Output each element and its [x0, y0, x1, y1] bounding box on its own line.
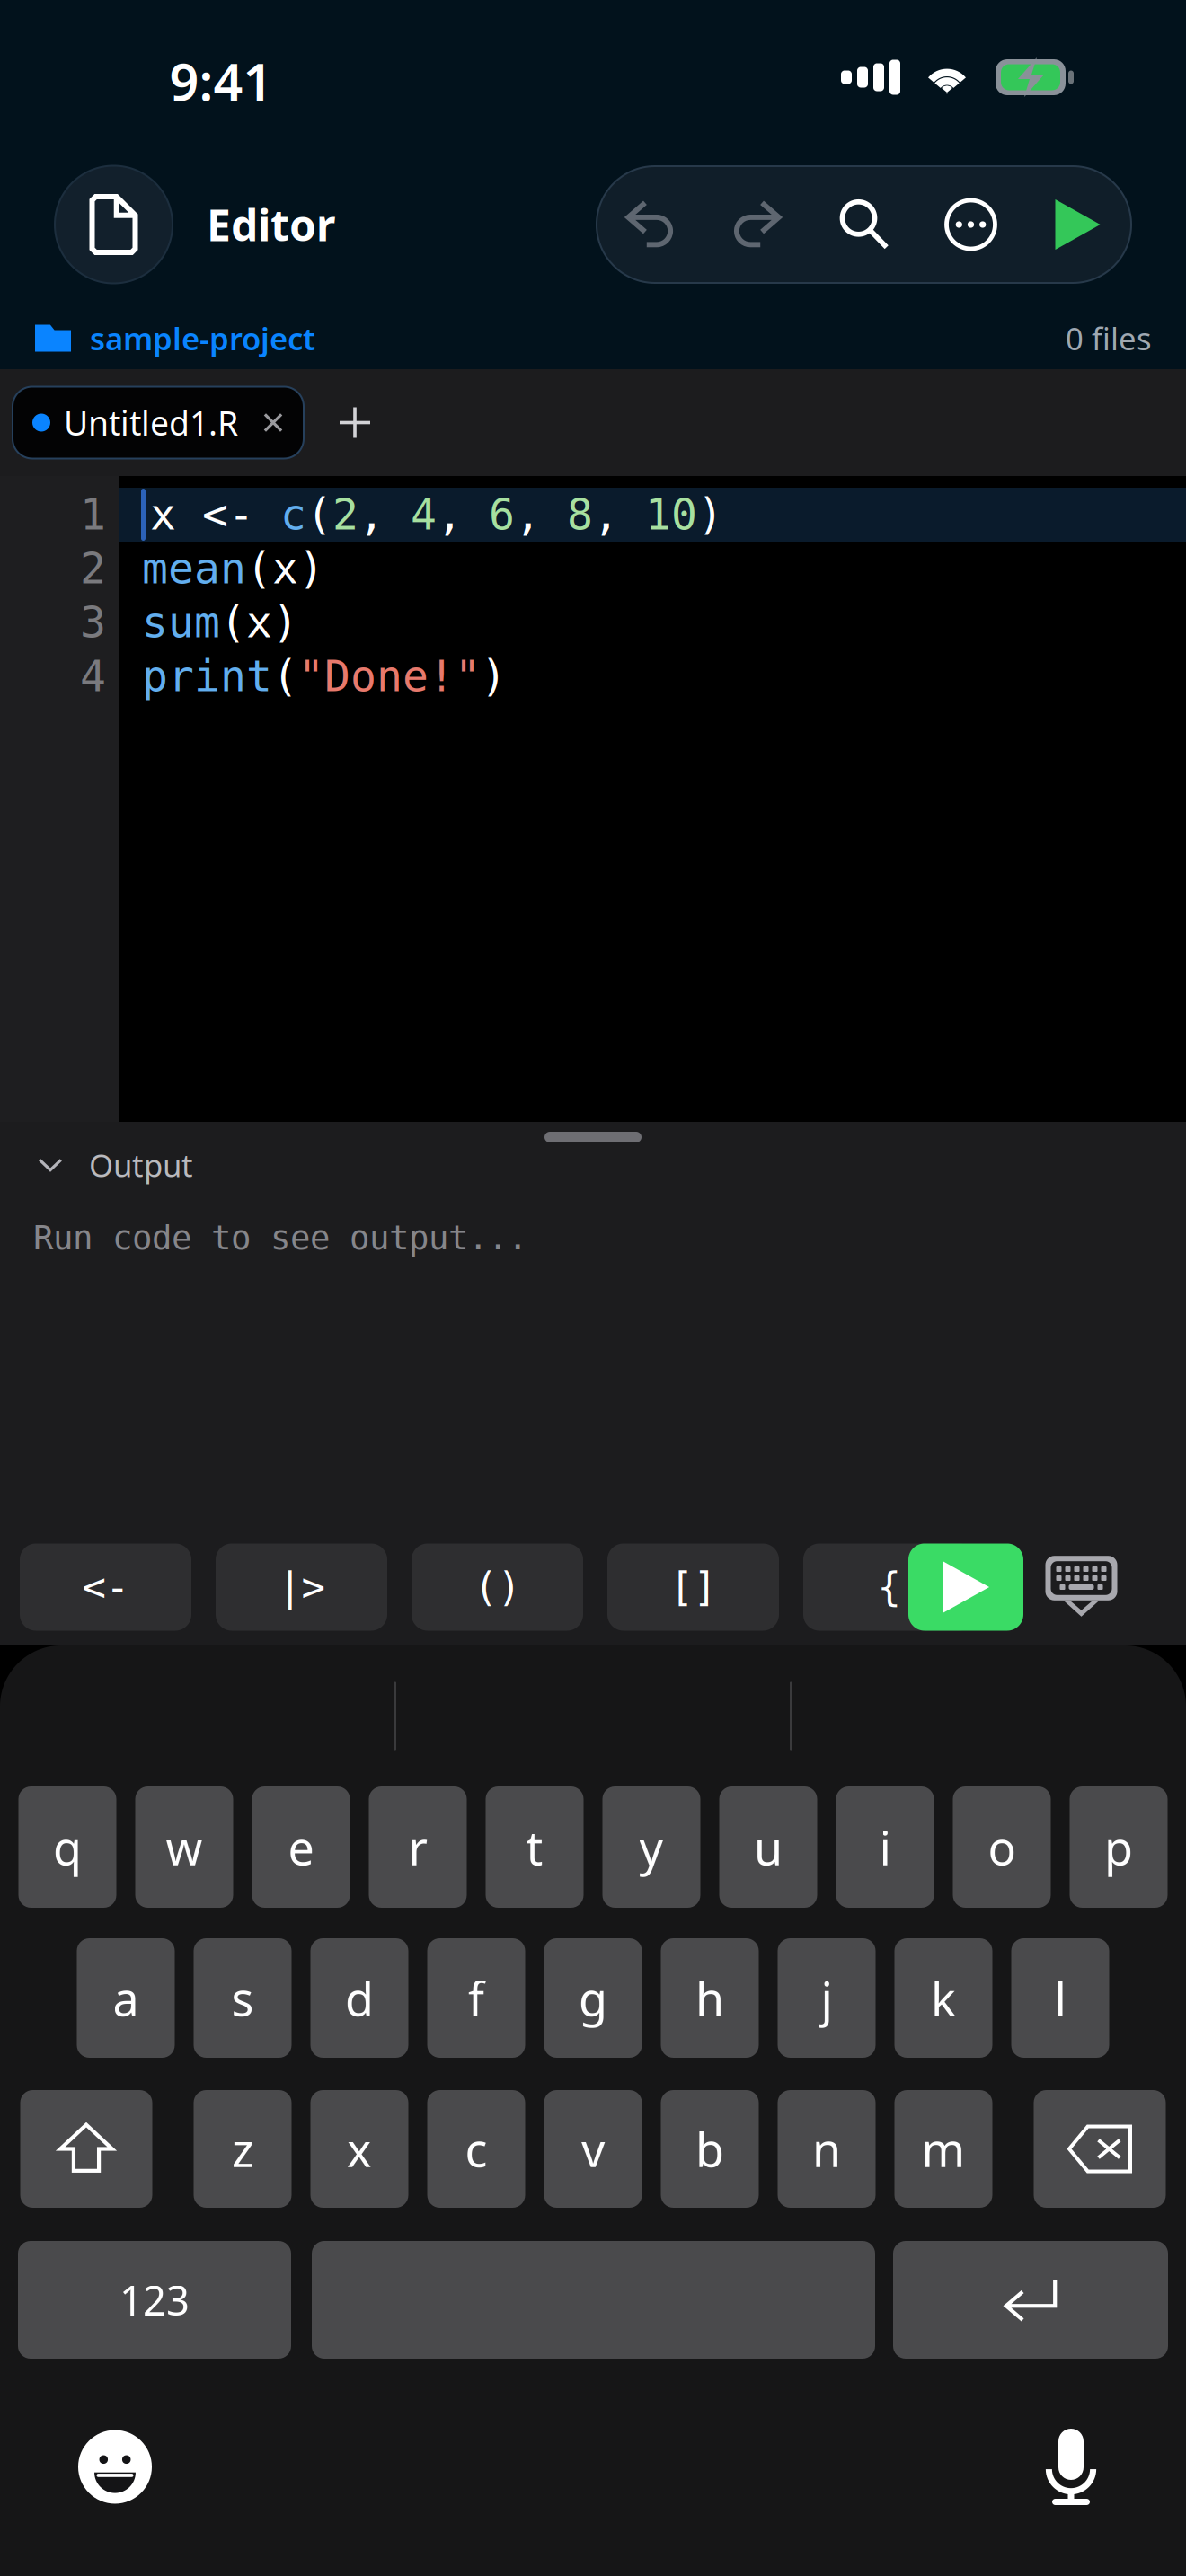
button[interactable]: []: [607, 1544, 779, 1631]
staticText: print: [142, 652, 272, 701]
staticText: sum: [142, 598, 220, 647]
staticText: 123: [119, 2273, 190, 2327]
staticText: {: [877, 1565, 901, 1609]
staticText: (: [272, 652, 298, 701]
button[interactable]: a: [77, 1938, 175, 2058]
staticText: c: [280, 490, 306, 539]
staticText: h: [695, 1967, 724, 2029]
staticText: 1: [80, 490, 106, 539]
button[interactable]: h: [661, 1938, 759, 2058]
button[interactable]: p: [1070, 1786, 1168, 1908]
staticText: 9:41: [169, 47, 273, 115]
staticText: 3: [80, 598, 106, 647]
button[interactable]: i: [836, 1786, 934, 1908]
button[interactable]: z: [194, 2090, 292, 2208]
button[interactable]: w: [135, 1786, 233, 1908]
staticText: i: [879, 1816, 891, 1878]
button[interactable]: 123: [18, 2241, 291, 2359]
staticText: 10: [645, 490, 697, 539]
staticText: s: [231, 1967, 254, 2029]
staticText: y: [639, 1816, 664, 1878]
button[interactable]: e: [252, 1786, 350, 1908]
button[interactable]: s: [194, 1938, 292, 2058]
button[interactable]: u: [719, 1786, 817, 1908]
staticText: d: [345, 1967, 374, 2029]
staticText: k: [931, 1967, 956, 2029]
button[interactable]: g: [544, 1938, 642, 2058]
staticText: ): [481, 652, 507, 701]
staticText: sample-project: [90, 318, 315, 359]
button[interactable]: f: [427, 1938, 525, 2058]
button[interactable]: Editor: [55, 166, 335, 283]
staticText: 2: [332, 490, 358, 539]
button[interactable]: Delete: [1034, 2090, 1166, 2208]
button[interactable]: t: [486, 1786, 584, 1908]
staticText: b: [695, 2118, 724, 2180]
button[interactable]: Emoji keyboard: [63, 2424, 167, 2510]
staticText: 4: [411, 490, 437, 539]
button[interactable]: n: [778, 2090, 876, 2208]
staticText: a: [113, 1967, 139, 2029]
staticText: 2: [80, 544, 106, 593]
staticText: mean: [142, 544, 246, 593]
staticText: r: [408, 1816, 427, 1878]
staticText: z: [232, 2118, 253, 2180]
staticText: <-: [82, 1565, 129, 1609]
button[interactable]: Run code: [908, 1544, 1023, 1631]
staticText: "Done!": [298, 652, 481, 701]
button[interactable]: Hide keyboard: [1023, 1544, 1139, 1631]
button[interactable]: Run: [1024, 166, 1131, 283]
button[interactable]: Untitled1.R: [13, 387, 304, 459]
button[interactable]: r: [369, 1786, 467, 1908]
button[interactable]: Undo: [597, 166, 704, 283]
button[interactable]: (): [412, 1544, 583, 1631]
button[interactable]: l: [1011, 1938, 1109, 2058]
staticText: ,: [515, 490, 567, 539]
staticText: v: [581, 2118, 605, 2180]
button[interactable]: <-: [20, 1544, 191, 1631]
staticText: 6: [489, 490, 515, 539]
button[interactable]: o: [953, 1786, 1051, 1908]
button[interactable]: Shift: [20, 2090, 152, 2208]
staticText: x: [347, 2118, 372, 2180]
button[interactable]: x: [310, 2090, 408, 2208]
staticText: |>: [278, 1565, 325, 1609]
button[interactable]: Redo: [704, 166, 810, 283]
staticText: w: [166, 1816, 203, 1878]
staticText: e: [288, 1816, 314, 1878]
staticText: j: [821, 1967, 832, 2029]
staticText: (: [306, 490, 332, 539]
button[interactable]: Dictation: [1019, 2424, 1123, 2510]
staticText: u: [754, 1816, 783, 1878]
button[interactable]: j: [778, 1938, 876, 2058]
staticText: l: [1054, 1967, 1066, 2029]
button[interactable]: y: [602, 1786, 700, 1908]
staticText: ,: [437, 490, 489, 539]
staticText: []: [670, 1565, 717, 1609]
button[interactable]: d: [310, 1938, 408, 2058]
staticText: (): [474, 1565, 521, 1609]
staticText: (x): [220, 598, 298, 647]
button[interactable]: Return: [893, 2241, 1168, 2359]
button[interactable]: |>: [216, 1544, 387, 1631]
staticText: q: [53, 1816, 82, 1878]
staticText: (x): [246, 544, 324, 593]
button[interactable]: {: [803, 1544, 975, 1631]
button[interactable]: c: [427, 2090, 525, 2208]
button[interactable]: b: [661, 2090, 759, 2208]
button[interactable]: New file: [310, 378, 400, 468]
button[interactable]: v: [544, 2090, 642, 2208]
staticText: g: [579, 1967, 607, 2029]
button[interactable]: k: [894, 1938, 992, 2058]
button[interactable]: m: [894, 2090, 992, 2208]
button[interactable]: More: [917, 166, 1024, 283]
button[interactable]: q: [18, 1786, 116, 1908]
staticText: 8: [567, 490, 593, 539]
staticText: t: [526, 1816, 543, 1878]
staticText: f: [468, 1967, 484, 2029]
button[interactable]: Search: [810, 166, 917, 283]
staticText: c: [465, 2118, 487, 2180]
staticText: 0 files: [1066, 318, 1152, 359]
staticText: Editor: [207, 196, 335, 253]
